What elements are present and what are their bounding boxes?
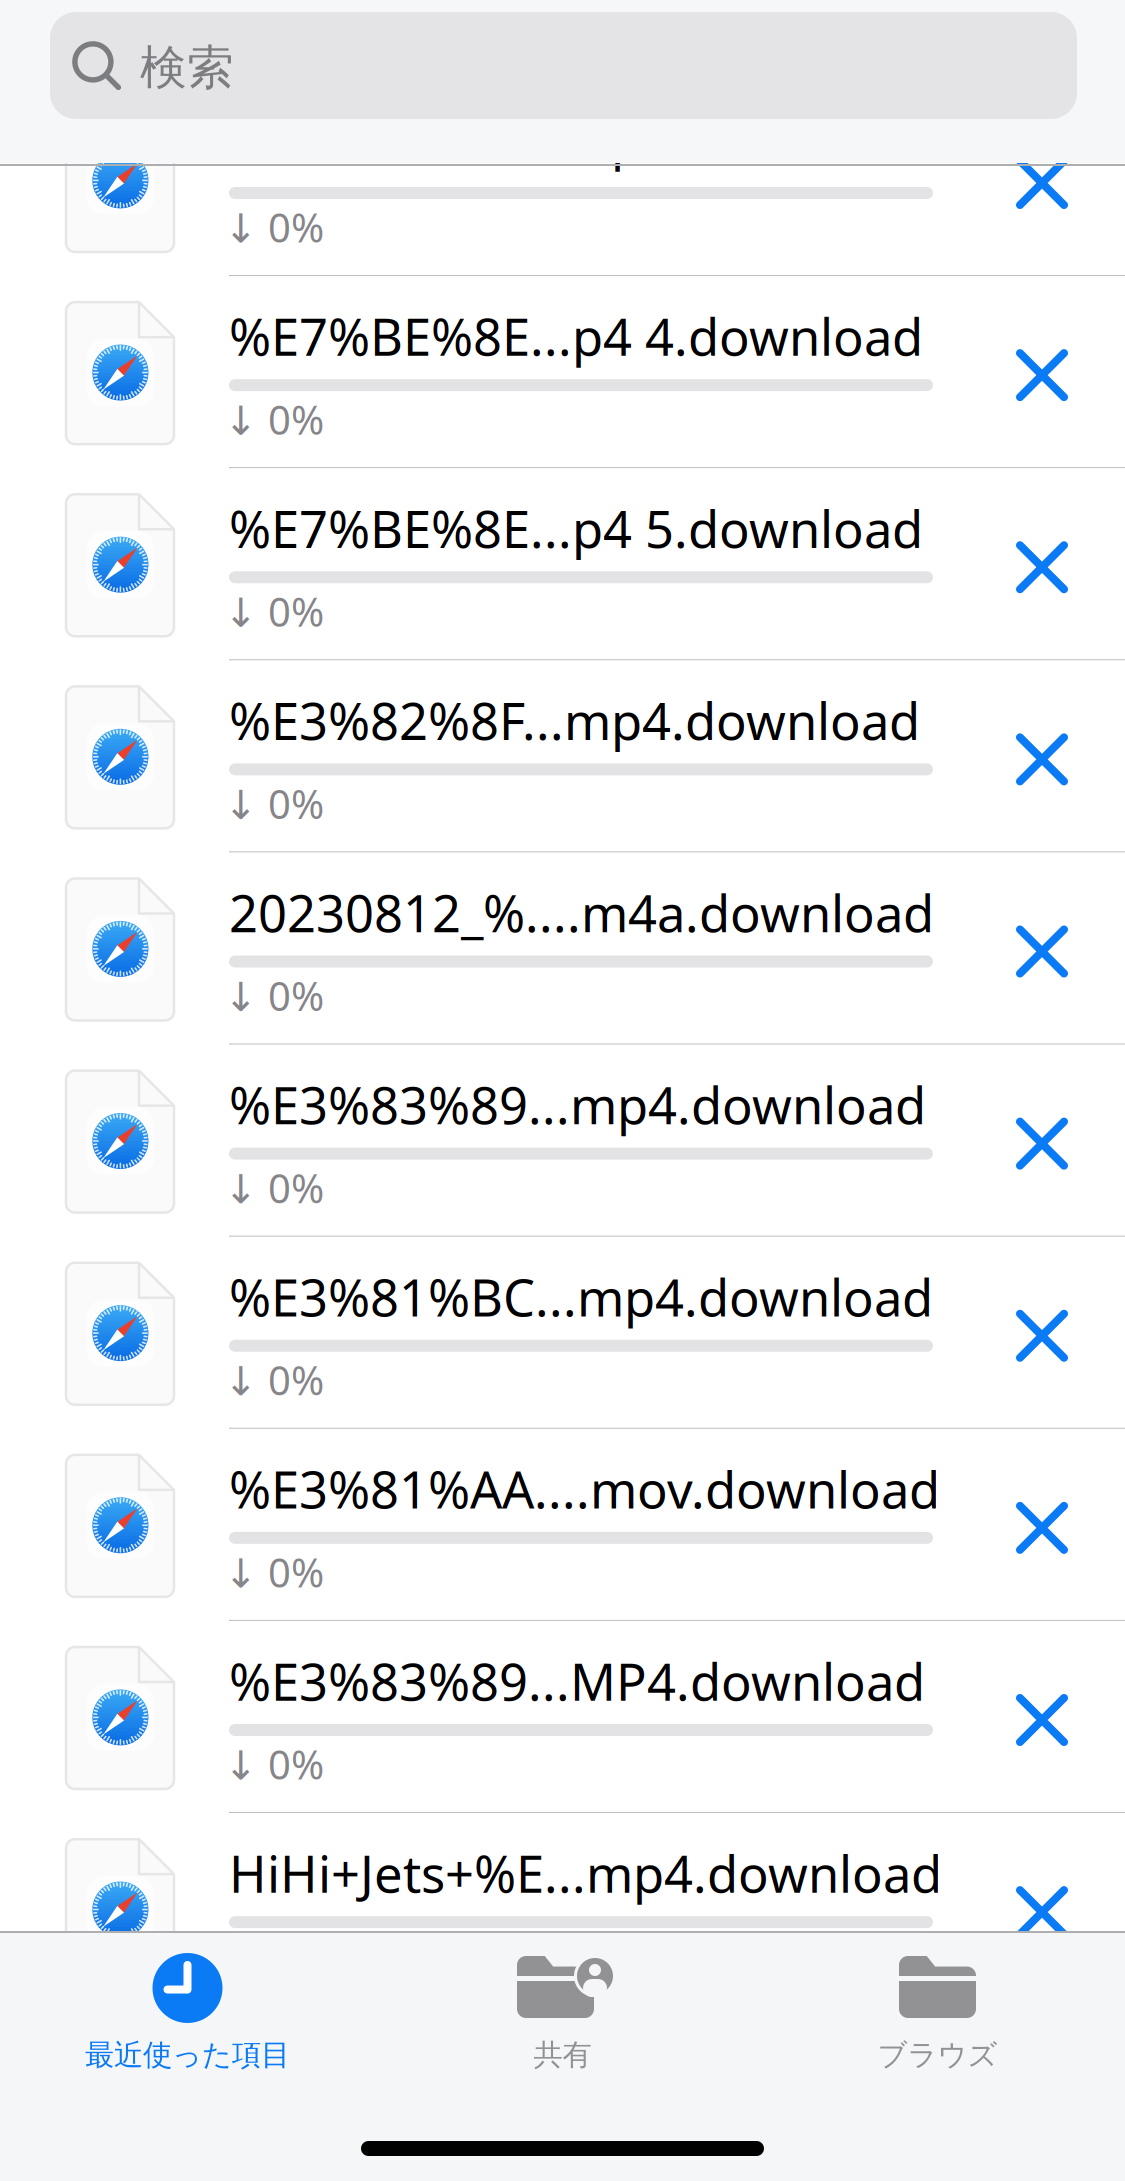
button[interactable]: %E7%BE%8E...p4 4.download [0,275,1000,468]
button[interactable]: Stop download [986,1665,1098,1775]
staticText: %E3%82%8F...mp4.download [229,687,920,754]
staticText: %E7%BE%8E...p4 5.download [229,495,923,562]
staticText: 最近使った項目 [85,2037,290,2073]
staticText: ↓ 0% [224,1161,324,1214]
button[interactable]: Stop download [986,512,1098,622]
button[interactable]: %E3%81%AA....mov.download [0,1428,1000,1621]
staticText: HiHi+Jets+%E...mp4.download [229,1839,942,1907]
staticText: %E3%83%89...MP4.download [229,1647,925,1715]
staticText: 検索 [140,39,234,96]
button[interactable]: %E7%BE%8E...p4 5.download [0,467,1000,660]
staticText: %E3%81%BC...mp4.download [229,1263,933,1330]
button[interactable]: Stop download [986,896,1098,1006]
staticText: ↓ 0% [224,393,324,446]
button[interactable]: %E3%83%8F...mp4.download [0,83,1000,276]
button[interactable]: Stop download [986,1089,1098,1199]
staticText: 20230812_%....m4a.download [229,879,934,946]
staticText: ↓ 0% [224,1737,324,1790]
staticText: %E7%BE%8E...p4 4.download [229,302,923,370]
button[interactable]: ブラウズ [750,1953,1125,2073]
button[interactable]: Stop download [986,1473,1098,1583]
button[interactable]: 共有 [375,1953,750,2073]
button[interactable]: Stop download [986,1281,1098,1391]
button[interactable]: Stop download [986,1857,1098,1967]
button[interactable]: %E3%81%BC...mp4.download [0,1236,1000,1429]
button[interactable]: %E3%83%89...MP4.download [0,1620,1000,1813]
staticText: ↓ 0% [224,585,324,638]
staticText: ↓ 0% [224,777,324,830]
staticText: 共有 [533,2037,591,2073]
button[interactable]: Stop download [986,128,1098,238]
button[interactable]: HiHi+Jets+%E...mp4.download [0,1812,1000,2005]
button[interactable]: 20230812_%....m4a.download [0,851,1000,1044]
staticText: %E3%83%8F...mp4.download [229,106,920,174]
staticText: ↓ 0% [224,1353,324,1406]
staticText: %E3%83%89...mp4.download [229,1071,926,1138]
staticText: ↓ 0% [224,969,324,1022]
staticText: ↓ 0% [224,200,324,253]
button[interactable]: 検索 [50,12,1077,119]
button[interactable]: Stop download [986,704,1098,814]
staticText: ↓ 0% [224,1545,324,1598]
staticText: %E3%81%AA....mov.download [229,1455,940,1522]
staticText: ブラウズ [877,2037,997,2073]
button[interactable]: %E3%83%89...mp4.download [0,1044,1000,1237]
button[interactable]: Stop download [986,320,1098,430]
button[interactable]: %E3%82%8F...mp4.download [0,659,1000,852]
staticText: ↓ 0% [224,1930,324,1983]
button[interactable]: 最近使った項目 [0,1953,375,2073]
